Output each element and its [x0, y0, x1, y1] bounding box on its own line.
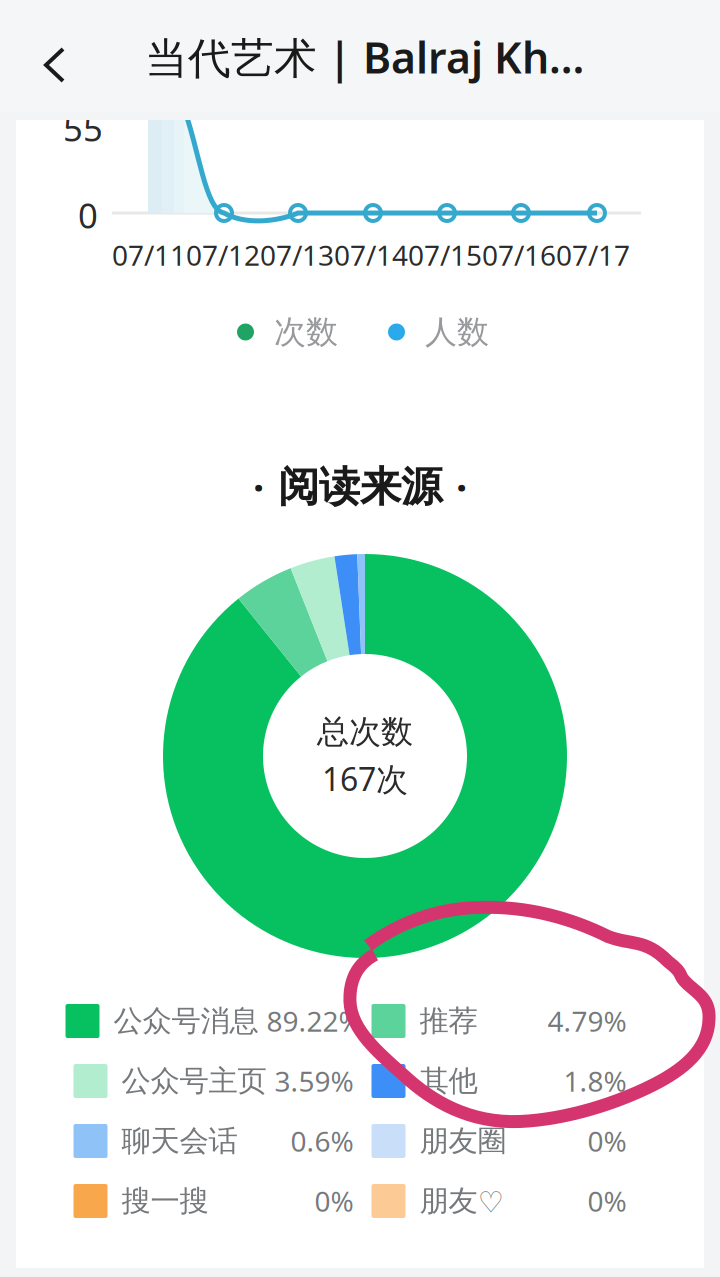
staticText: 公众号消息 — [113, 1003, 258, 1039]
staticText: 0% — [587, 1182, 626, 1220]
staticText: 3.59% — [274, 1062, 353, 1100]
button[interactable]: Back — [0, 0, 104, 112]
staticText: 0% — [314, 1182, 353, 1220]
button[interactable]: 朋友圈 — [371, 1111, 626, 1171]
staticText: 167次 — [322, 757, 408, 800]
staticText: 朋友♡ — [419, 1183, 503, 1219]
staticText: 搜一搜 — [121, 1183, 208, 1219]
button[interactable]: 其他 — [371, 1051, 626, 1111]
staticText: 0.6% — [290, 1122, 353, 1160]
staticText: 朋友圈 — [419, 1123, 506, 1159]
button[interactable]: 公众号主页 — [73, 1051, 353, 1111]
staticText: 55 — [63, 105, 103, 151]
button[interactable]: 人数 — [388, 312, 489, 352]
button[interactable]: 推荐 — [371, 991, 626, 1051]
staticText: · — [253, 460, 264, 513]
staticText: 07/1107/1207/1307/1407/1507/1607/17 — [112, 236, 630, 274]
staticText: 89.22% — [266, 1002, 361, 1040]
staticText: 阅读来源 — [278, 462, 442, 512]
staticText: 公众号主页 — [121, 1063, 266, 1099]
staticText: 1.8% — [563, 1062, 626, 1100]
staticText: · — [456, 460, 467, 513]
staticText: 人数 — [425, 312, 489, 352]
staticText: 0 — [78, 192, 98, 238]
staticText: 4.79% — [547, 1002, 626, 1040]
staticText: 当代艺术 | Balraj Kh… — [145, 29, 584, 85]
staticText: 聊天会话 — [121, 1123, 237, 1159]
button[interactable]: 聊天会话 — [73, 1111, 353, 1171]
staticText: 推荐 — [419, 1003, 477, 1039]
button[interactable]: 次数 — [237, 312, 338, 352]
button[interactable]: 搜一搜 — [73, 1171, 353, 1231]
staticText: 0% — [587, 1122, 626, 1160]
button[interactable]: 朋友♡ — [371, 1171, 626, 1231]
staticText: 其他 — [419, 1063, 477, 1099]
staticText: 总次数 — [317, 712, 413, 751]
button[interactable]: 公众号消息 — [73, 991, 353, 1051]
staticText: 次数 — [274, 312, 338, 352]
